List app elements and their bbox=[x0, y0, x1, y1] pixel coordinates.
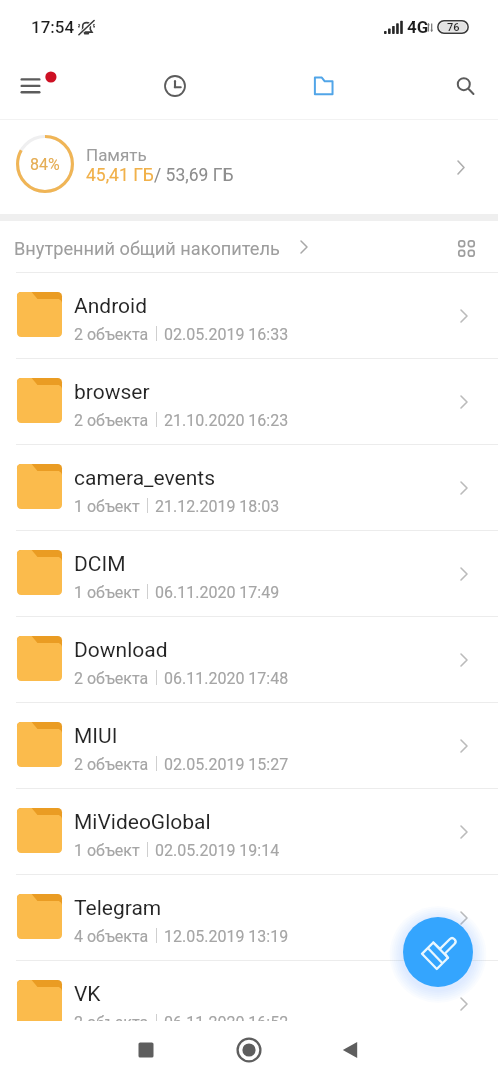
button[interactable]: Внутренний общий накопитель bbox=[14, 238, 300, 259]
staticText: 1 объект bbox=[74, 583, 140, 602]
button[interactable]: Menu bbox=[7, 63, 53, 109]
button[interactable]: MIUI bbox=[0, 703, 498, 789]
button[interactable]: Telegram bbox=[0, 875, 498, 961]
staticText: 02.05.2019 16:33 bbox=[164, 325, 289, 344]
staticText: 84% bbox=[30, 155, 60, 174]
staticText: 17:54 bbox=[31, 17, 75, 37]
button[interactable]: Files bbox=[301, 63, 346, 108]
staticText: MiVideoGlobal bbox=[74, 810, 211, 835]
staticText: browser bbox=[74, 380, 150, 405]
staticText: Telegram bbox=[74, 896, 162, 921]
button[interactable]: browser bbox=[0, 359, 498, 445]
button[interactable]: Search bbox=[443, 64, 488, 109]
staticText: / 53,69 ГБ bbox=[154, 165, 234, 186]
staticText: 2 объекта bbox=[74, 669, 149, 688]
staticText: 2 объекта bbox=[74, 411, 149, 430]
staticText: Память bbox=[86, 145, 147, 165]
staticText: 12.05.2019 13:19 bbox=[164, 927, 289, 946]
staticText: 2 объекта bbox=[74, 1013, 149, 1032]
staticText: 2 объекта bbox=[74, 755, 149, 774]
staticText: Android bbox=[74, 294, 147, 319]
button[interactable]: VK bbox=[0, 961, 498, 1047]
staticText: 2 объекта bbox=[74, 325, 149, 344]
button[interactable]: MiVideoGlobal bbox=[0, 789, 498, 875]
staticText: VK bbox=[74, 982, 101, 1007]
button[interactable]: Clean up storage bbox=[403, 917, 473, 987]
staticText: Внутренний общий накопитель bbox=[14, 238, 280, 259]
staticText: 21.12.2019 18:03 bbox=[155, 497, 280, 516]
staticText: 1 объект bbox=[74, 841, 140, 860]
button[interactable]: Android bbox=[0, 273, 498, 359]
staticText: 02.05.2019 15:27 bbox=[164, 755, 289, 774]
staticText: camera_events bbox=[74, 466, 216, 491]
staticText: 02.05.2019 19:14 bbox=[155, 841, 280, 860]
button[interactable]: DCIM bbox=[0, 531, 498, 617]
button[interactable]: Grid view bbox=[447, 229, 486, 268]
staticText: Download bbox=[74, 638, 168, 663]
staticText: 45,41 ГБ bbox=[86, 165, 154, 186]
staticText: 76 bbox=[447, 21, 460, 34]
button[interactable]: Recents bbox=[124, 1028, 168, 1072]
staticText: MIUI bbox=[74, 724, 118, 749]
button[interactable]: camera_events bbox=[0, 445, 498, 531]
button[interactable]: Home bbox=[227, 1028, 271, 1072]
staticText: 06.11.2020 16:52 bbox=[164, 1013, 289, 1032]
staticText: 4G bbox=[407, 17, 429, 37]
button[interactable]: Download bbox=[0, 617, 498, 703]
staticText: 06.11.2020 17:48 bbox=[164, 669, 289, 688]
button[interactable]: 84% bbox=[0, 118, 498, 214]
staticText: 06.11.2020 17:49 bbox=[155, 583, 280, 602]
button[interactable]: Back bbox=[328, 1028, 372, 1072]
staticText: 1 объект bbox=[74, 497, 140, 516]
staticText: 4 объекта bbox=[74, 927, 149, 946]
staticText: DCIM bbox=[74, 552, 126, 577]
button[interactable]: Recent files bbox=[152, 63, 197, 108]
staticText: 21.10.2020 16:23 bbox=[164, 411, 289, 430]
